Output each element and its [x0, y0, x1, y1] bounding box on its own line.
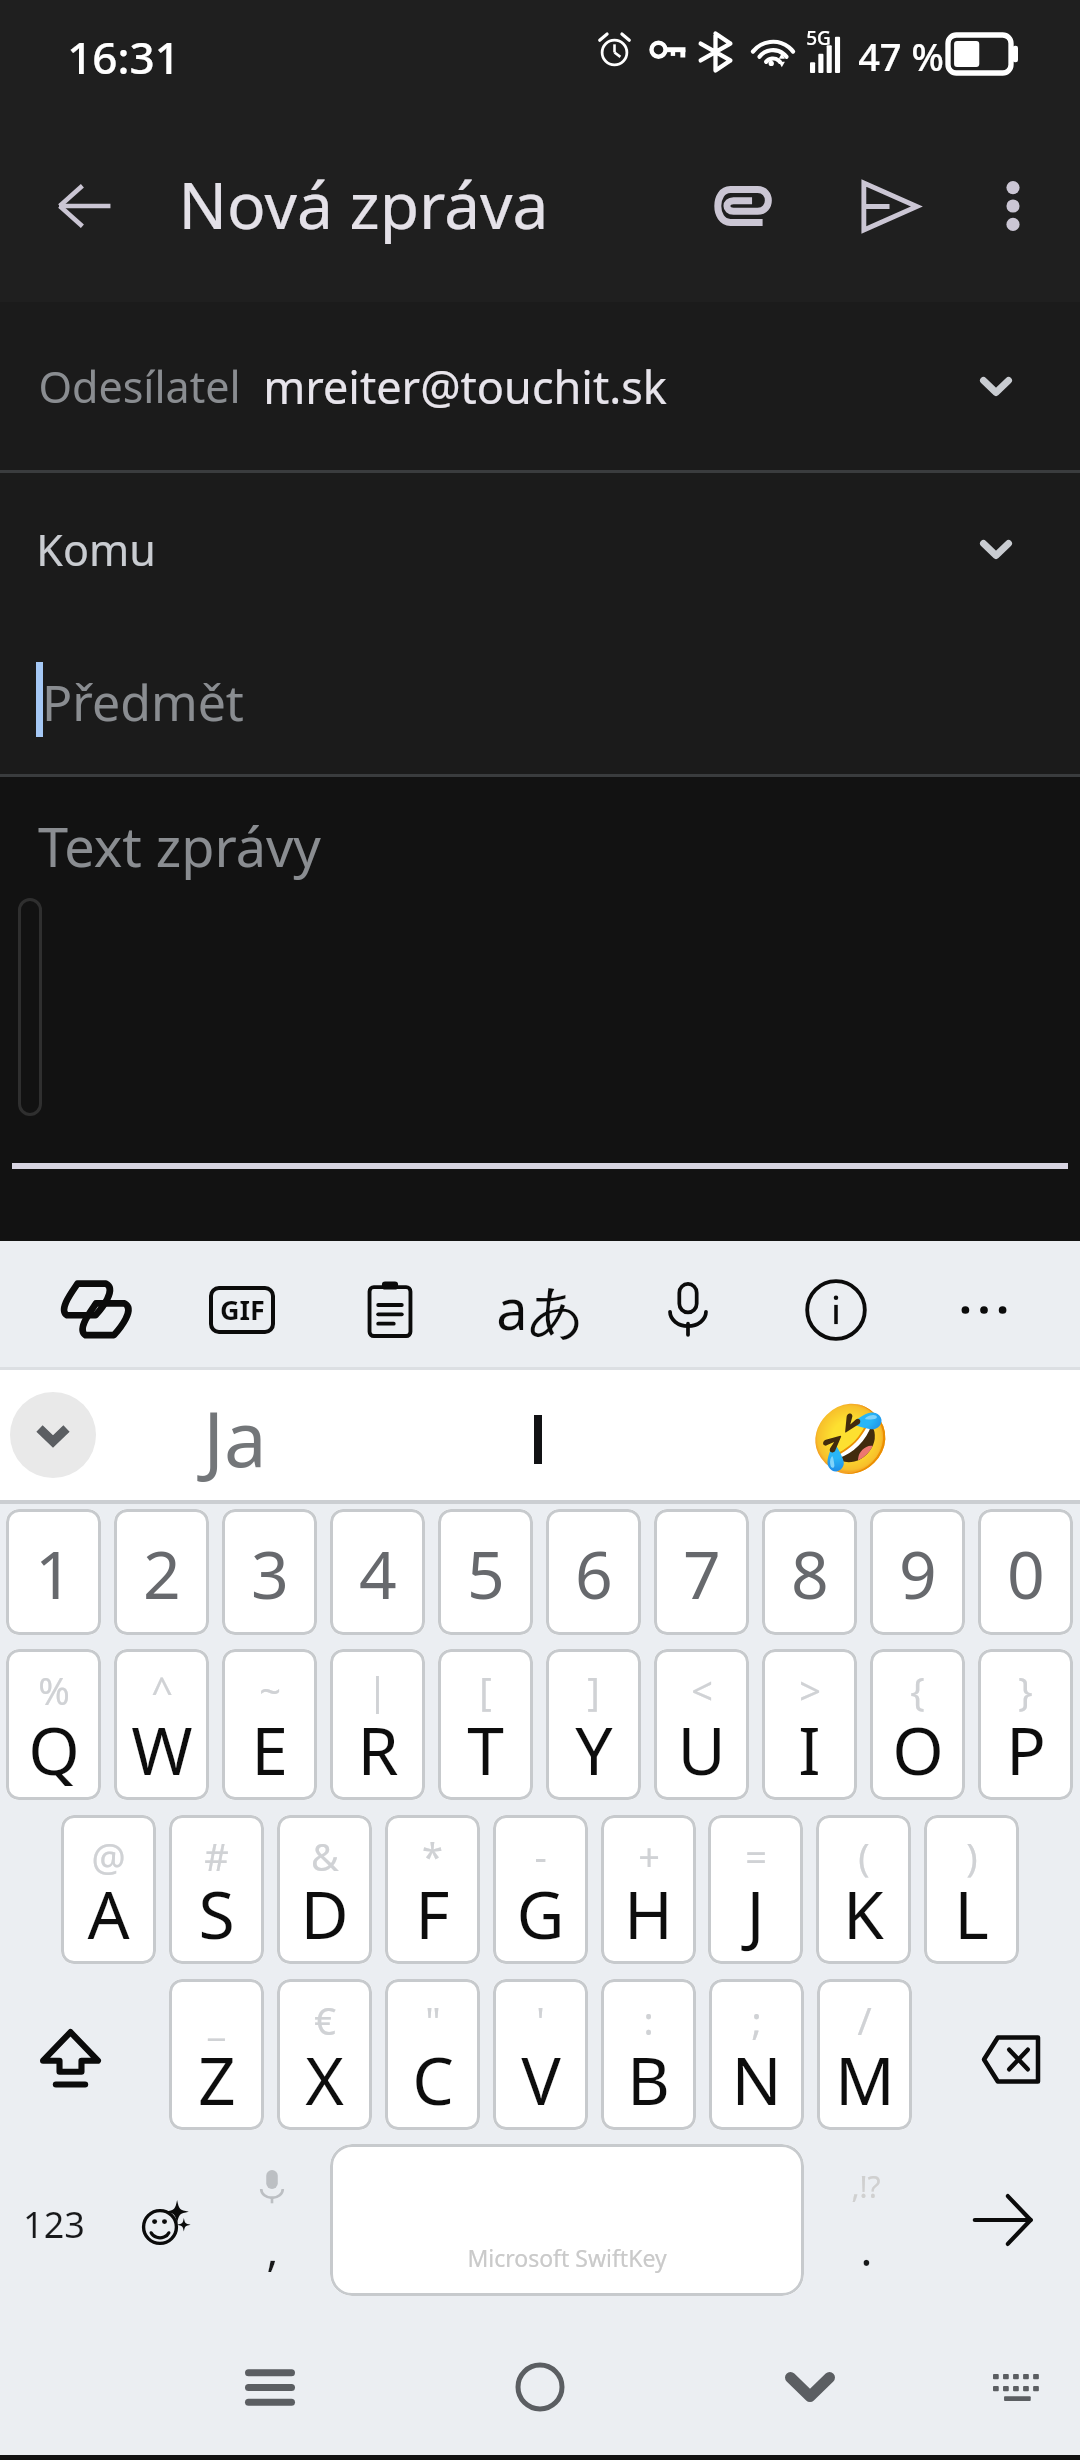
button[interactable]: 6 [546, 1509, 641, 1635]
button[interactable]: & [277, 1815, 372, 1964]
staticText: 5G [806, 25, 831, 51]
button[interactable]: Attach file [692, 154, 796, 258]
button[interactable]: > [762, 1649, 857, 1800]
button[interactable]: 3 [222, 1509, 317, 1635]
button[interactable]: Emoji [110, 2144, 218, 2296]
staticText: * [422, 1830, 443, 1882]
staticText: # [204, 1830, 229, 1882]
button[interactable]: Voice input [634, 1247, 742, 1373]
staticText: 2 [143, 1528, 181, 1618]
button[interactable]: 0 [978, 1509, 1073, 1635]
button[interactable]: 🤣 [730, 1370, 970, 1500]
button[interactable]: ,!? [810, 2144, 922, 2296]
button[interactable]: Info [782, 1247, 890, 1373]
button[interactable]: More [930, 1247, 1038, 1373]
button[interactable]: Translate [486, 1247, 594, 1373]
button[interactable]: @ [61, 1815, 156, 1964]
staticText: D [300, 1868, 349, 1958]
button[interactable]: } [978, 1649, 1073, 1800]
button[interactable]: Home [470, 2327, 610, 2447]
button[interactable]: Hide keyboard [740, 2327, 880, 2447]
staticText: > [799, 1664, 821, 1716]
button[interactable]: 5 [438, 1509, 533, 1635]
button[interactable]: 2 [114, 1509, 209, 1635]
staticText: R [357, 1704, 399, 1794]
button[interactable]: : [601, 1979, 696, 2130]
button[interactable]: ~ [222, 1649, 317, 1800]
staticText: ~ [259, 1664, 281, 1716]
button[interactable]: Předmět [0, 625, 1080, 774]
button[interactable]: 9 [870, 1509, 965, 1635]
button[interactable]: ( [816, 1815, 911, 1964]
staticText: " [425, 1994, 441, 2046]
staticText: + [638, 1830, 660, 1882]
staticText: J [746, 1868, 765, 1958]
button[interactable]: Back [36, 158, 132, 254]
staticText: K [843, 1868, 884, 1958]
button[interactable]: # [169, 1815, 264, 1964]
staticText: 9 [899, 1528, 937, 1618]
button[interactable]: * [385, 1815, 480, 1964]
staticText: _ [208, 1994, 225, 2046]
staticText: H [624, 1868, 673, 1958]
button[interactable]: < [654, 1649, 749, 1800]
button[interactable]: = [708, 1815, 803, 1964]
staticText: / [857, 1994, 872, 2046]
button[interactable]: GIF [188, 1247, 296, 1373]
button[interactable]: { [870, 1649, 965, 1800]
staticText: GIF [220, 1291, 265, 1328]
staticText: Microsoft SwiftKey [467, 2242, 667, 2273]
button[interactable]: 1 [6, 1509, 101, 1635]
staticText: aあ [496, 1270, 585, 1346]
button[interactable]: Komu [0, 473, 1080, 625]
button[interactable]: , [218, 2144, 326, 2296]
button[interactable]: Ja [115, 1370, 355, 1500]
button[interactable]: 123 [0, 2144, 110, 2296]
button[interactable]: [ [438, 1649, 533, 1800]
staticText: 6 [575, 1528, 613, 1618]
button[interactable]: ; [709, 1979, 804, 2130]
button[interactable]: Stickers [42, 1247, 150, 1373]
staticText: % [38, 1664, 70, 1716]
button[interactable]: % [6, 1649, 101, 1800]
button[interactable]: Send [837, 154, 941, 258]
button[interactable] [418, 1370, 658, 1500]
button[interactable]: Shift [0, 1979, 155, 2130]
button[interactable]: - [493, 1815, 588, 1964]
button[interactable]: € [277, 1979, 372, 2130]
button[interactable]: | [330, 1649, 425, 1800]
button[interactable]: _ [169, 1979, 264, 2130]
button[interactable]: More options [965, 158, 1061, 254]
button[interactable]: + [601, 1815, 696, 1964]
button[interactable]: ^ [114, 1649, 209, 1800]
button[interactable]: 8 [762, 1509, 857, 1635]
button[interactable]: Collapse suggestions [10, 1392, 96, 1478]
staticText: U [677, 1704, 726, 1794]
button[interactable]: ] [546, 1649, 641, 1800]
staticText: 7 [683, 1528, 721, 1618]
button[interactable]: Space [330, 2144, 804, 2296]
staticText: Text zprávy [38, 809, 321, 883]
staticText: ) [966, 1830, 978, 1882]
button[interactable]: " [385, 1979, 480, 2130]
staticText: Odesílatel [38, 357, 241, 416]
staticText: [ [479, 1664, 492, 1716]
button[interactable]: Text zprávy [0, 777, 1080, 1241]
staticText: ; [751, 1994, 762, 2046]
button[interactable]: Switch keyboard [946, 2327, 1080, 2447]
button[interactable]: / [817, 1979, 912, 2130]
button[interactable]: ) [924, 1815, 1019, 1964]
staticText: € [314, 1994, 336, 2046]
button[interactable]: 7 [654, 1509, 749, 1635]
button[interactable]: ' [493, 1979, 588, 2130]
button[interactable]: Recents [200, 2327, 340, 2447]
button[interactable]: Odesílatel [0, 302, 1080, 470]
staticText: ] [587, 1664, 600, 1716]
staticText: ( [858, 1830, 870, 1882]
staticText: B [627, 2034, 670, 2124]
staticText: O [892, 1704, 944, 1794]
button[interactable]: Clipboard [336, 1247, 444, 1373]
button[interactable]: Enter [925, 2144, 1080, 2296]
button[interactable]: Backspace [925, 1979, 1080, 2130]
button[interactable]: 4 [330, 1509, 425, 1635]
